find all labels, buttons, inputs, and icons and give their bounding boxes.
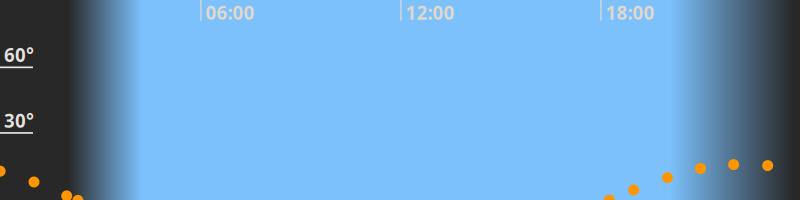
staticText: 06:00 <box>205 0 254 25</box>
staticText: 30° <box>4 108 34 133</box>
staticText: 12:00 <box>405 0 454 25</box>
staticText: 18:00 <box>605 0 654 25</box>
staticText: 60° <box>4 42 34 67</box>
